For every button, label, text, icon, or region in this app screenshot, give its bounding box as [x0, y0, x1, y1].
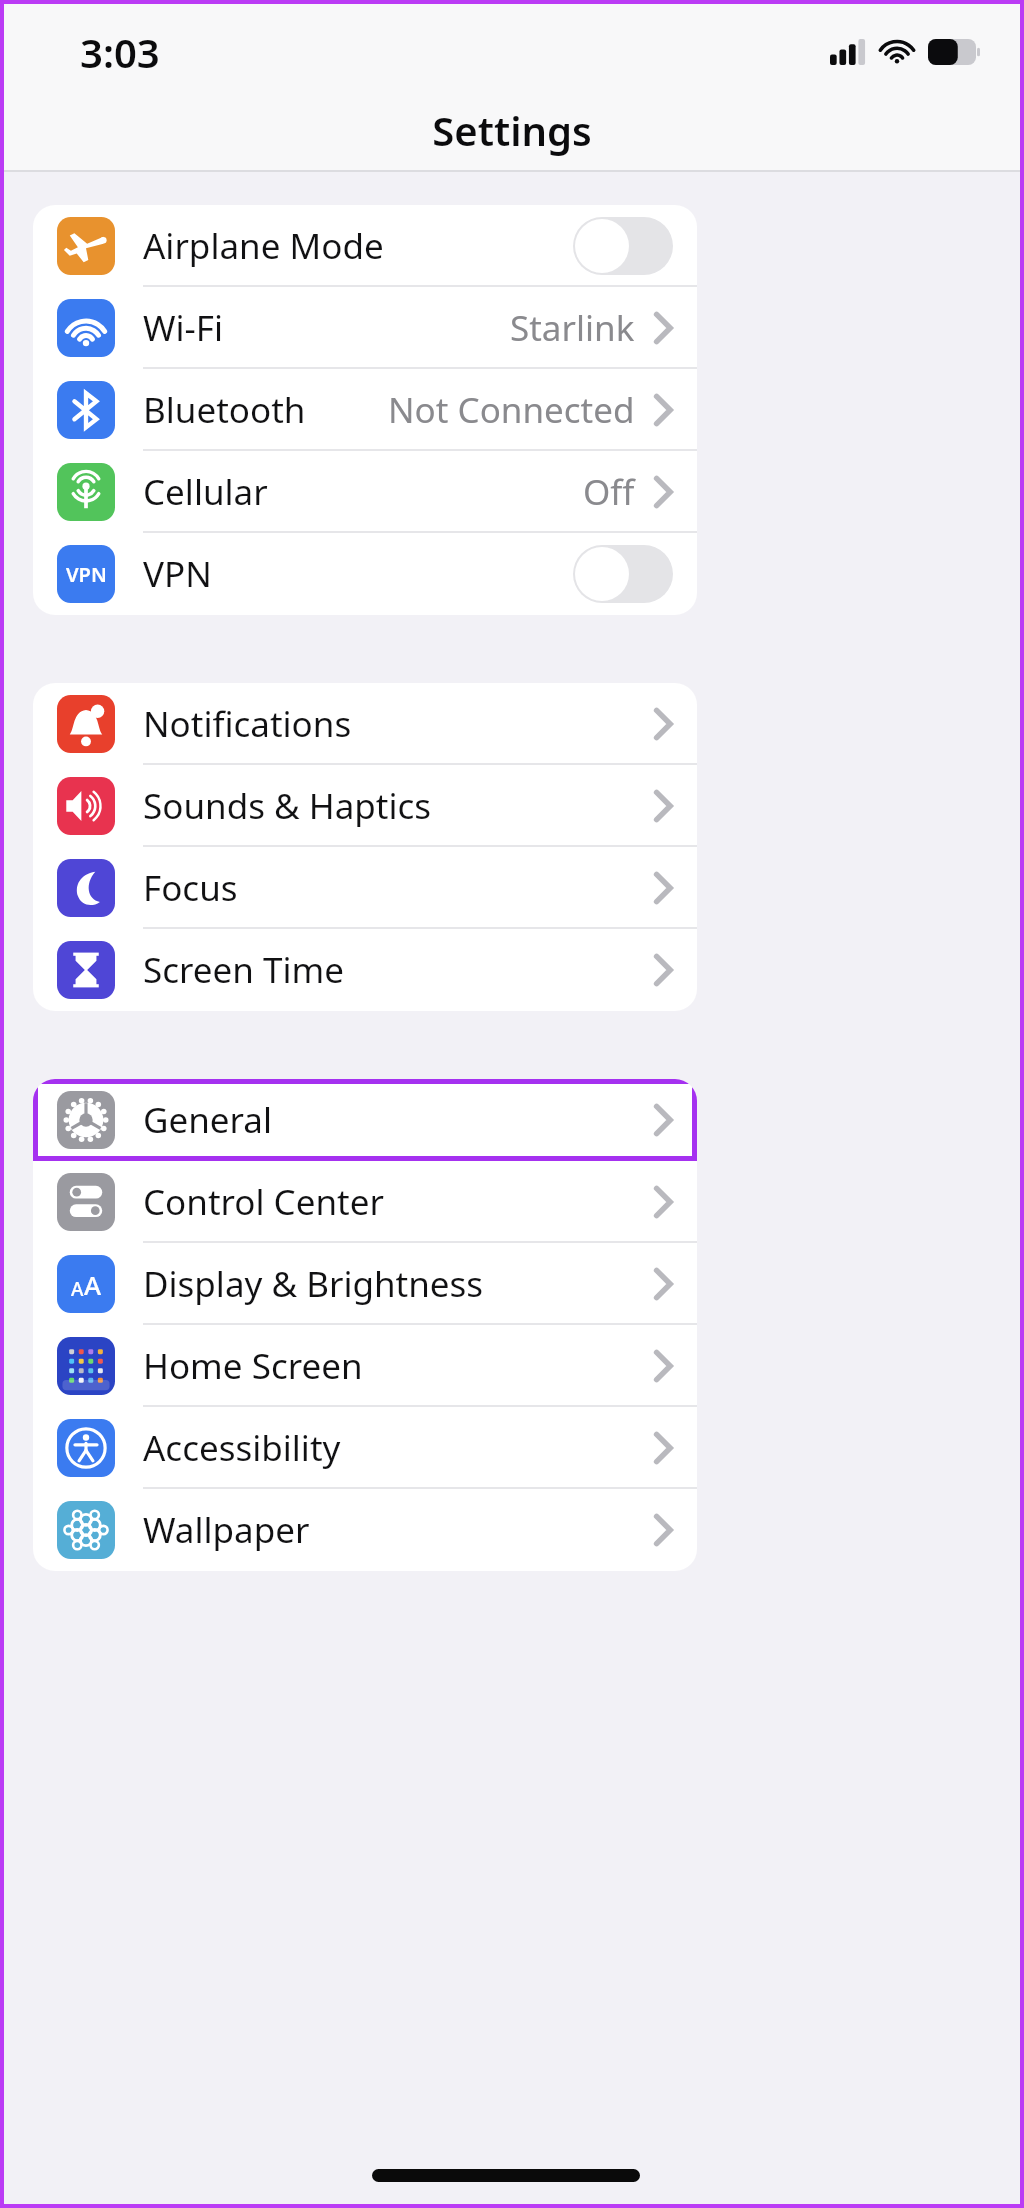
staticText: Cellular: [143, 468, 268, 516]
staticText: Settings: [432, 103, 592, 157]
button[interactable]: Focus: [33, 847, 697, 929]
staticText: A: [71, 1276, 84, 1302]
staticText: VPN: [143, 550, 212, 598]
staticText: Control Center: [143, 1178, 384, 1226]
button[interactable]: Notifications: [33, 683, 697, 765]
staticText: Sounds & Haptics: [143, 782, 432, 830]
staticText: A: [84, 1267, 102, 1302]
button[interactable]: Screen Time: [33, 929, 697, 1011]
staticText: Off: [583, 468, 635, 516]
staticText: VPN: [66, 561, 107, 588]
button[interactable]: Cellular: [33, 451, 697, 533]
button[interactable]: A: [33, 1243, 697, 1325]
staticText: Home Screen: [143, 1342, 363, 1390]
staticText: Wallpaper: [143, 1506, 310, 1554]
button[interactable]: Wallpaper: [33, 1489, 697, 1571]
button[interactable]: General: [33, 1079, 697, 1161]
button[interactable]: VPN: [33, 533, 697, 615]
staticText: Focus: [143, 864, 238, 912]
staticText: Wi-Fi: [143, 304, 224, 352]
staticText: Bluetooth: [143, 386, 306, 434]
button[interactable]: Wi-Fi: [33, 287, 697, 369]
button[interactable]: Control Center: [33, 1161, 697, 1243]
staticText: Accessibility: [143, 1424, 341, 1472]
staticText: Screen Time: [143, 946, 344, 994]
staticText: General: [143, 1096, 273, 1144]
button[interactable]: Airplane Mode: [33, 205, 697, 287]
button[interactable]: Home Screen: [33, 1325, 697, 1407]
button[interactable]: Accessibility: [33, 1407, 697, 1489]
staticText: 3:03: [80, 25, 160, 79]
staticText: Display & Brightness: [143, 1260, 484, 1308]
staticText: Airplane Mode: [143, 222, 384, 270]
staticText: Starlink: [510, 304, 635, 352]
staticText: Not Connected: [388, 386, 635, 434]
button[interactable]: Sounds & Haptics: [33, 765, 697, 847]
staticText: Notifications: [143, 700, 352, 748]
button[interactable]: Bluetooth: [33, 369, 697, 451]
